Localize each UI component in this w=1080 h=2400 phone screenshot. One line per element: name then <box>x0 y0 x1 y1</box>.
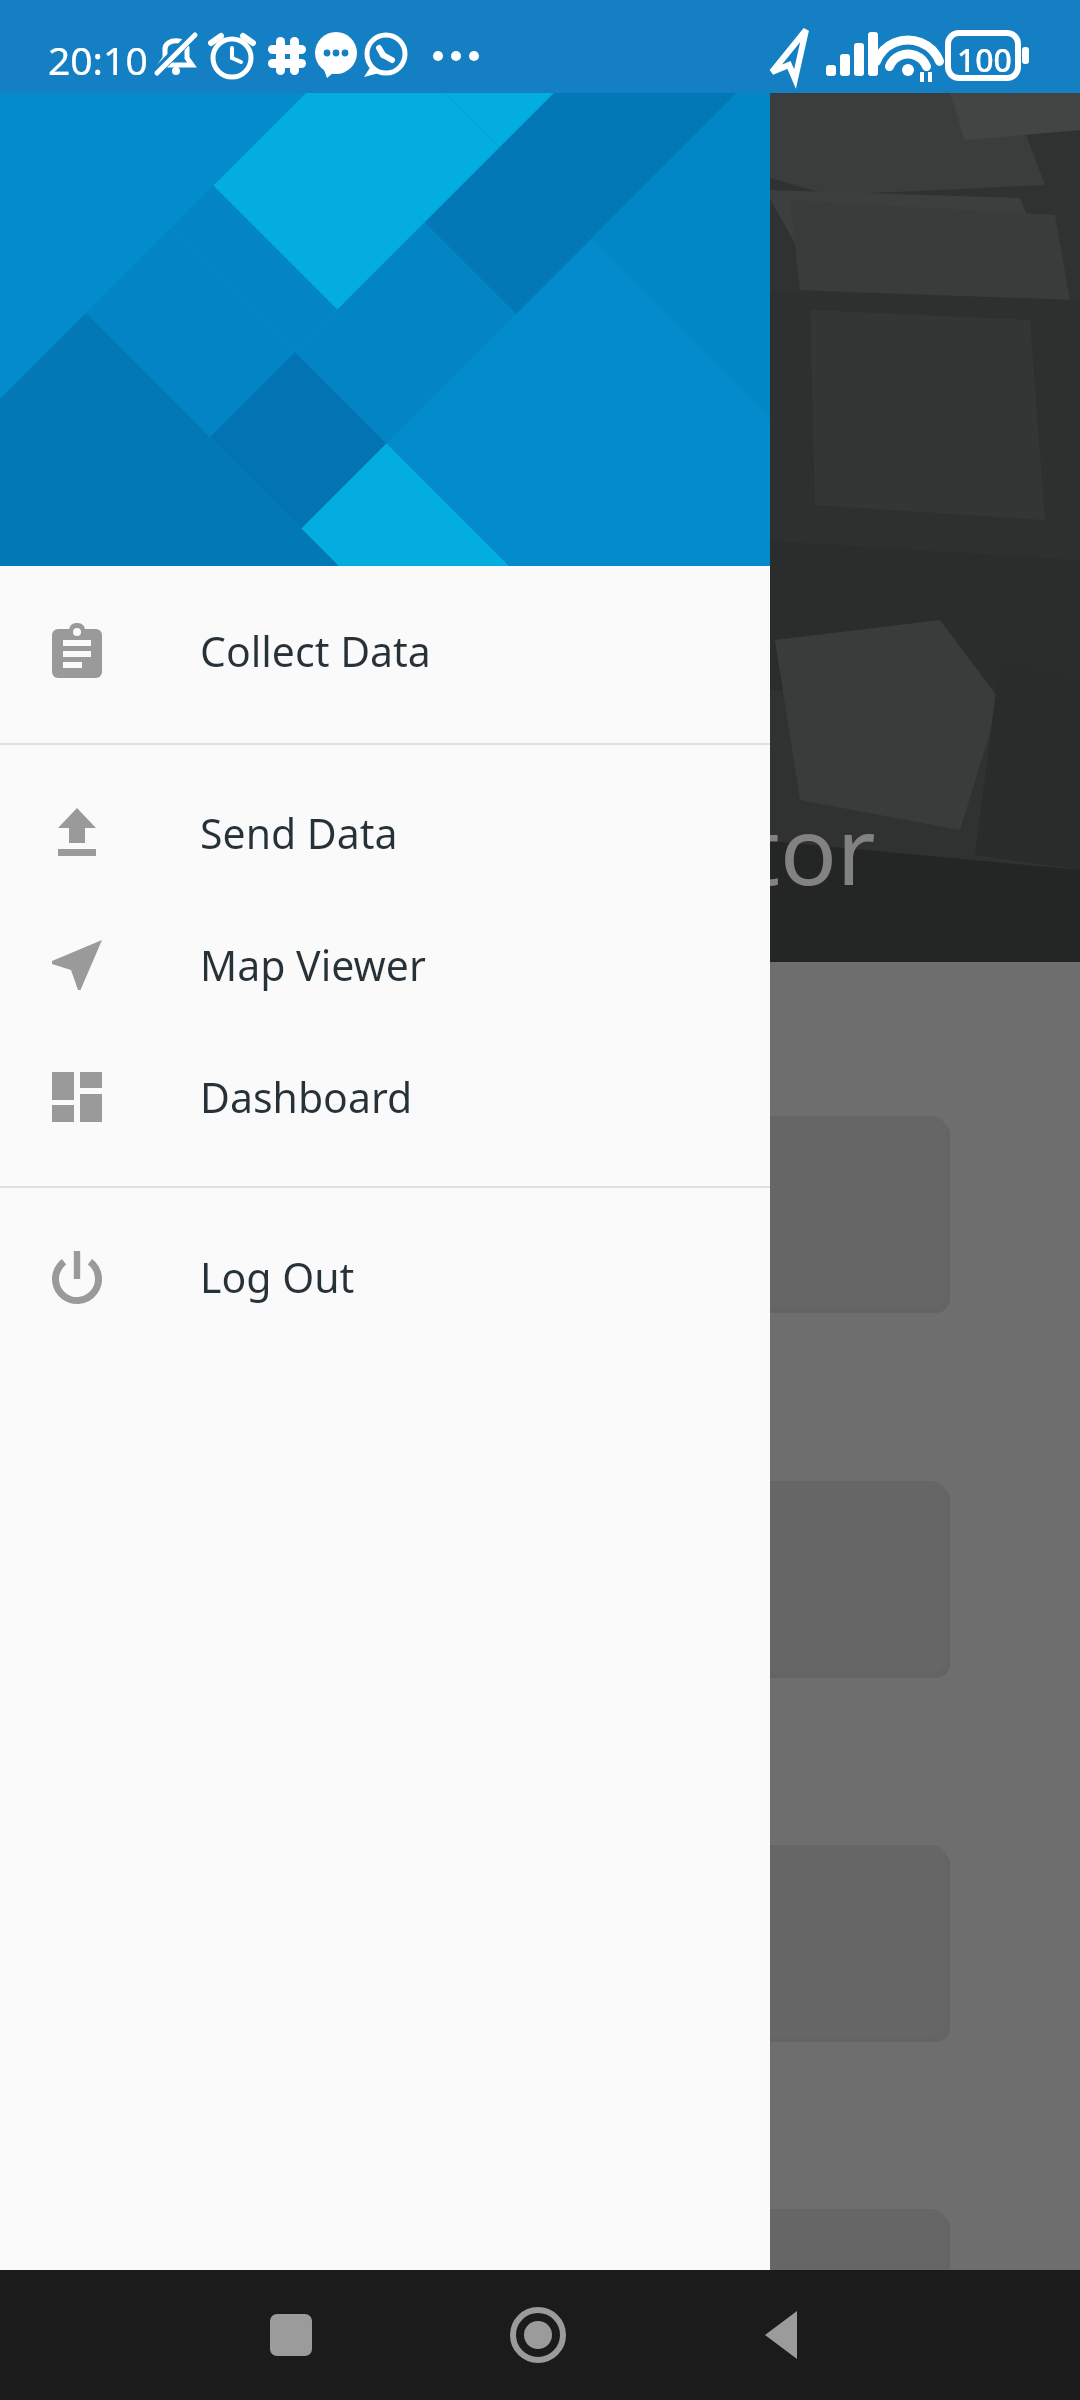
button[interactable]: Dashboard <box>0 1031 770 1163</box>
staticText: 20:10 <box>48 33 148 86</box>
staticText: 100 <box>957 38 1012 82</box>
staticText: Send Data <box>200 805 398 861</box>
staticText: Dashboard <box>200 1069 413 1125</box>
button[interactable]: Log Out <box>0 1211 770 1343</box>
button[interactable]: Send Data <box>0 767 770 899</box>
button[interactable]: Collect Data <box>0 585 770 717</box>
button[interactable]: Map Viewer <box>0 899 770 1031</box>
staticText: Log Out <box>200 1249 355 1305</box>
staticText: Map Viewer <box>200 937 426 993</box>
staticText: tor <box>746 785 876 913</box>
staticText: Collect Data <box>200 623 431 679</box>
